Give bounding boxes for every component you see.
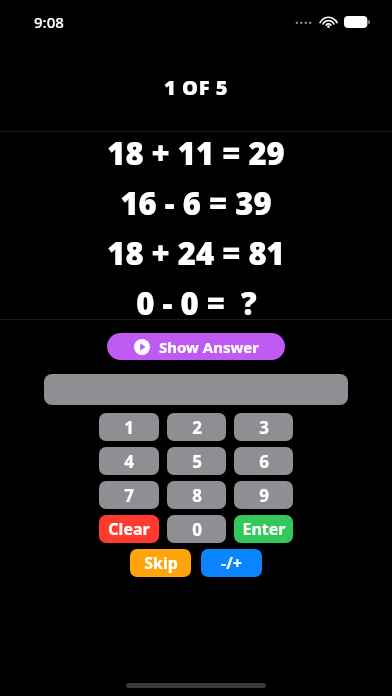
button[interactable]: 9 — [234, 481, 293, 509]
staticText: 1 OF 5 — [164, 74, 229, 101]
staticText: 9 — [259, 484, 269, 507]
button[interactable]: 8 — [167, 481, 226, 509]
staticText: Skip — [144, 552, 178, 574]
staticText: -/+ — [221, 552, 242, 574]
staticText: 18 + 11 = 29 — [107, 132, 285, 174]
staticText: 3 — [259, 416, 269, 439]
staticText: 5 — [192, 450, 202, 473]
button[interactable]: Answer input — [44, 374, 348, 405]
staticText: 0 - 0 = ? — [136, 282, 257, 319]
staticText: 16 - 6 = 39 — [120, 182, 272, 224]
button[interactable]: Skip — [130, 549, 191, 577]
button[interactable]: 7 — [99, 481, 159, 509]
staticText: Enter — [242, 518, 286, 540]
staticText: Show Answer — [159, 337, 259, 357]
staticText: 2 — [192, 416, 202, 439]
staticText: 4 — [124, 450, 134, 473]
staticText: 6 — [259, 450, 269, 473]
staticText: 18 + 24 = 81 — [107, 232, 285, 274]
button[interactable]: Enter — [234, 515, 293, 543]
button[interactable]: 0 — [167, 515, 226, 543]
button[interactable]: Show Answer — [107, 333, 285, 360]
button[interactable]: 1 — [99, 413, 159, 441]
button[interactable]: 4 — [99, 447, 159, 475]
button[interactable]: 3 — [234, 413, 293, 441]
button[interactable]: 2 — [167, 413, 226, 441]
staticText: 7 — [124, 484, 134, 507]
button[interactable]: 6 — [234, 447, 293, 475]
button[interactable]: Clear — [99, 515, 159, 543]
staticText: 1 — [124, 416, 134, 439]
staticText: 9:08 — [34, 12, 64, 32]
staticText: 0 — [192, 518, 202, 541]
staticText: Clear — [108, 518, 150, 540]
button[interactable]: -/+ — [201, 549, 262, 577]
staticText: 8 — [192, 484, 202, 507]
button[interactable]: 5 — [167, 447, 226, 475]
